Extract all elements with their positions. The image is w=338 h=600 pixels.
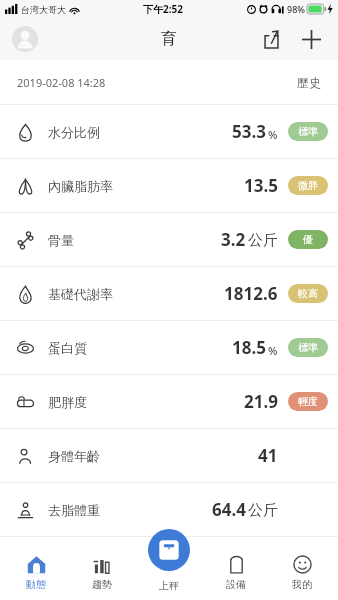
button[interactable]: 蛋白質 [0, 320, 338, 374]
staticText: 骨量 [48, 232, 74, 248]
button[interactable]: 動態 [5, 545, 67, 600]
staticText: 蛋白質 [48, 340, 87, 356]
staticText: 我的 [292, 578, 312, 591]
staticText: 53.3 [232, 120, 266, 143]
staticText: 公斤 [248, 231, 278, 250]
staticText: 設備 [226, 578, 246, 591]
staticText: 輕度 [298, 395, 318, 408]
button[interactable]: 我的 [271, 545, 333, 600]
staticText: 98% [287, 3, 305, 15]
staticText: 基礎代謝率 [48, 286, 113, 302]
button[interactable]: 水分比例 [0, 104, 338, 158]
button[interactable]: 2019-02-08 14:28 [0, 60, 338, 104]
staticText: 標準 [298, 341, 318, 354]
button[interactable]: 內臟脂肪率 [0, 158, 338, 212]
button[interactable]: 基礎代謝率 [0, 266, 338, 320]
staticText: 3.2 [221, 228, 246, 251]
staticText: 台湾大哥大 [21, 4, 66, 15]
staticText: 較高 [298, 287, 318, 300]
staticText: 內臟脂肪率 [48, 178, 113, 194]
staticText: % [268, 127, 278, 142]
button[interactable]: 去脂體重 [0, 482, 338, 536]
button[interactable]: Share [254, 22, 288, 56]
button[interactable]: Add [294, 22, 328, 56]
button[interactable]: 上秤 [138, 545, 200, 600]
button[interactable]: 上秤 [148, 529, 190, 571]
button[interactable]: 身體年齡 [0, 428, 338, 482]
staticText: 身體年齡 [48, 448, 100, 464]
staticText: 64.4 [212, 498, 246, 521]
staticText: 1812.6 [224, 282, 278, 305]
staticText: 上秤 [159, 579, 179, 592]
button[interactable]: 趨勢 [71, 545, 133, 600]
staticText: 18.5 [232, 336, 266, 359]
button[interactable]: 設備 [205, 545, 267, 600]
staticText: 2019-02-08 14:28 [17, 75, 106, 90]
staticText: 歷史 [297, 75, 321, 90]
button[interactable]: 骨量 [0, 212, 338, 266]
button[interactable]: Profile [12, 26, 38, 52]
staticText: 標準 [298, 125, 318, 138]
staticText: % [268, 343, 278, 358]
staticText: 動態 [26, 578, 46, 591]
button[interactable]: 肥胖度 [0, 374, 338, 428]
staticText: 下午2:52 [143, 2, 183, 16]
staticText: 育 [161, 29, 177, 49]
staticText: 去脂體重 [48, 502, 100, 518]
staticText: 41 [258, 444, 278, 467]
staticText: 優 [303, 233, 313, 246]
staticText: 趨勢 [92, 578, 112, 591]
staticText: 水分比例 [48, 124, 100, 140]
staticText: 21.9 [244, 390, 278, 413]
staticText: 微胖 [298, 179, 318, 192]
staticText: 13.5 [244, 174, 278, 197]
staticText: 公斤 [248, 501, 278, 520]
staticText: 肥胖度 [48, 394, 87, 410]
